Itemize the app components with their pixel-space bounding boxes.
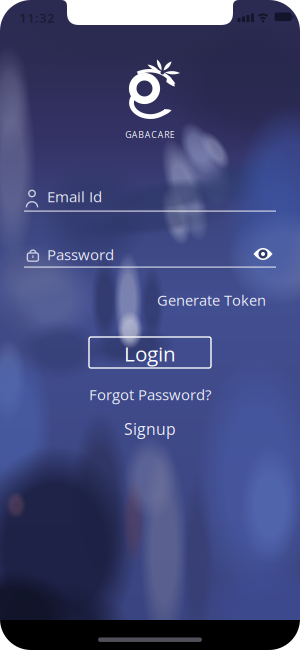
button[interactable]: Password — [24, 238, 276, 270]
button[interactable]: Generate Token — [106, 290, 266, 310]
button[interactable]: Email Id — [24, 180, 276, 212]
button[interactable]: Forgot Password? — [89, 384, 211, 405]
staticText: 11:32 — [19, 9, 55, 26]
staticText: Forgot Password? — [89, 384, 211, 405]
button[interactable]: Login — [89, 337, 211, 368]
staticText: Generate Token — [157, 290, 266, 310]
staticText: Password — [47, 244, 114, 265]
staticText: Email Id — [47, 186, 102, 207]
button[interactable]: Signup — [124, 418, 176, 440]
staticText: GABACARE — [125, 128, 175, 140]
staticText: Login — [124, 339, 176, 367]
staticText: Signup — [124, 418, 176, 440]
button[interactable]: Show password — [251, 245, 275, 263]
